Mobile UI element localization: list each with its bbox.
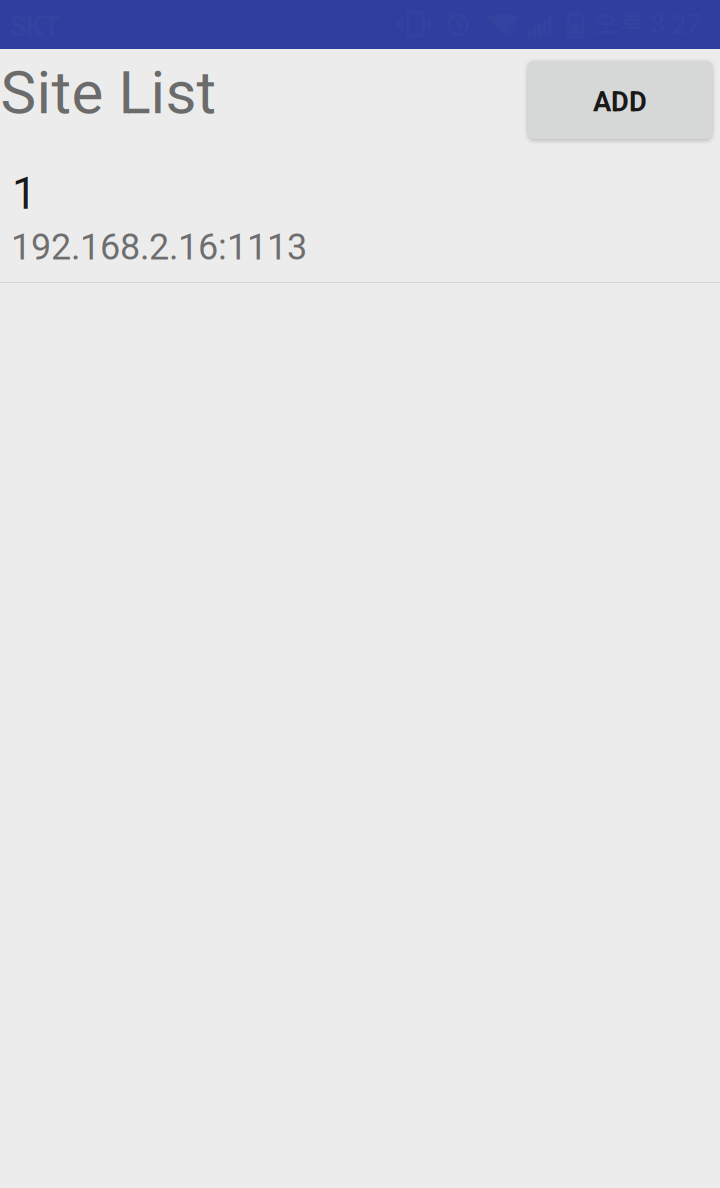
staticText: 1 <box>12 168 37 220</box>
staticText: ADD <box>593 86 647 118</box>
button[interactable]: ADD <box>528 61 712 139</box>
staticText: 192.168.2.16:1113 <box>11 226 307 268</box>
button[interactable]: 1 <box>0 167 720 283</box>
staticText: Site List <box>0 57 216 128</box>
